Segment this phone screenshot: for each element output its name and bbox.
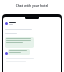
staticText: Chat with your hotel	[4, 4, 60, 8]
button[interactable]	[5, 22, 16, 25]
button[interactable]	[5, 37, 34, 48]
button[interactable]	[8, 49, 30, 55]
